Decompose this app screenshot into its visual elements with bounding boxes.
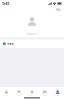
staticText: Name	[7, 42, 14, 45]
button[interactable]: Search	[13, 88, 26, 96]
button[interactable]: Alerts	[26, 88, 38, 96]
button[interactable]: Home	[0, 88, 13, 96]
staticText: Alerts	[30, 94, 34, 96]
staticText: Edit	[56, 8, 61, 12]
staticText: Account	[26, 32, 37, 35]
staticText: Home	[4, 94, 8, 96]
button[interactable]: Me	[51, 88, 64, 96]
button[interactable]: Chats	[38, 88, 51, 96]
staticText: 9:41	[2, 1, 9, 6]
button[interactable]: Edit	[55, 7, 62, 13]
staticText: Search	[16, 94, 22, 96]
staticText: Chats	[43, 94, 47, 96]
staticText: Me	[57, 94, 59, 96]
button[interactable]: Name	[0, 39, 64, 48]
